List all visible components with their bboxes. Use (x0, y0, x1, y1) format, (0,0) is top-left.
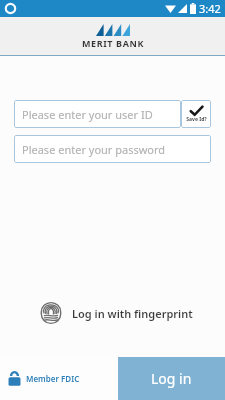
staticText: Log in with fingerprint (72, 306, 193, 321)
staticText: Please enter your user ID (22, 107, 153, 122)
button[interactable]: Please enter your password (14, 135, 211, 163)
button[interactable]: Log in (118, 357, 225, 400)
staticText: Member FDIC (26, 373, 80, 384)
button[interactable]: Save ID (181, 100, 211, 128)
staticText: 3:42 (199, 1, 221, 16)
button[interactable]: Please enter your user ID (14, 100, 181, 128)
staticText: Save Id? (186, 116, 207, 123)
staticText: Please enter your password (22, 142, 166, 157)
staticText: Log in (151, 369, 192, 388)
button[interactable]: Log in with fingerprint (40, 298, 225, 328)
staticText: MERIT BANK (82, 37, 144, 49)
button[interactable]: Member FDIC (0, 357, 118, 400)
